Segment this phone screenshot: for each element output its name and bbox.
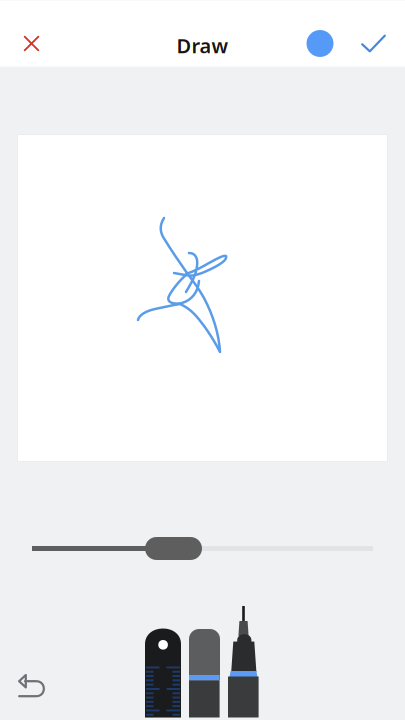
button[interactable]: Done — [346, 20, 401, 66]
button[interactable]: Close — [0, 20, 63, 66]
button[interactable]: Colour — [294, 20, 346, 66]
button[interactable]: Ruler — [0, 0, 405, 720]
button[interactable]: Marker — [0, 0, 405, 720]
button[interactable]: Pen — [0, 0, 405, 720]
button[interactable]: Undo — [0, 0, 405, 720]
button[interactable]: Stroke width — [0, 0, 405, 720]
staticText: Draw — [176, 32, 228, 59]
